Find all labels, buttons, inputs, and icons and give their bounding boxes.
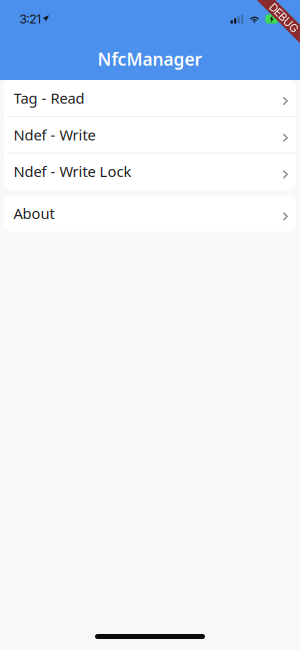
- button[interactable]: About: [4, 195, 296, 231]
- staticText: Tag - Read: [13, 88, 84, 108]
- button[interactable]: Ndef - Write: [4, 117, 296, 153]
- staticText: NfcManager: [97, 47, 202, 70]
- staticText: 3:21: [19, 12, 40, 26]
- button[interactable]: Tag - Read: [4, 80, 296, 116]
- staticText: About: [13, 204, 54, 223]
- staticText: Ndef - Write Lock: [13, 162, 131, 181]
- staticText: Ndef - Write: [13, 125, 95, 144]
- button[interactable]: Ndef - Write Lock: [4, 153, 296, 189]
- staticText: DEBUG: [266, 11, 300, 25]
